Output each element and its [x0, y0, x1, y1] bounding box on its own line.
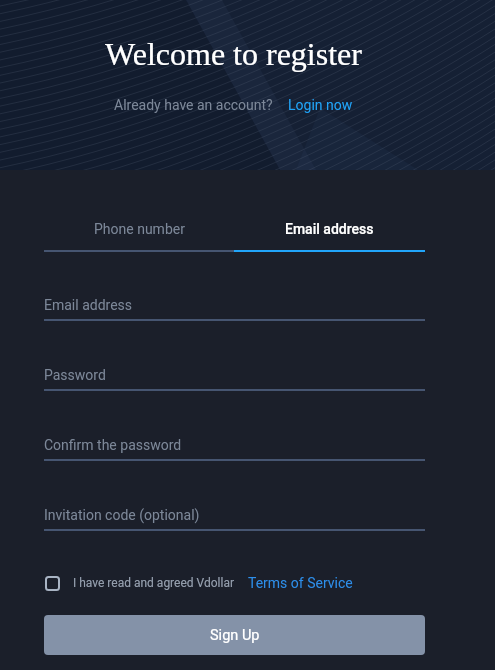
staticText: Phone number	[94, 221, 185, 237]
staticText: Login now	[288, 97, 353, 113]
button[interactable]: Email address	[44, 297, 425, 321]
staticText: Invitation code (optional)	[44, 507, 200, 523]
staticText: Sign Up	[210, 627, 260, 644]
button[interactable]: Terms of Service	[248, 575, 353, 591]
staticText: Email address	[285, 221, 374, 237]
button[interactable]: Confirm the password	[44, 437, 425, 461]
staticText: Confirm the password	[44, 437, 182, 453]
staticText: Password	[44, 367, 106, 383]
button[interactable]: Email address	[234, 215, 425, 243]
button[interactable]: Phone number	[44, 215, 234, 243]
staticText: Already have an account?	[114, 97, 273, 113]
button[interactable]: Invitation code (optional)	[44, 507, 425, 531]
staticText: Terms of Service	[248, 575, 353, 591]
staticText: Welcome to register	[105, 36, 362, 71]
staticText: Email address	[44, 297, 133, 313]
button[interactable]: Login now	[288, 97, 353, 113]
button[interactable]: Agree to terms and conditions	[45, 576, 60, 591]
button[interactable]: Sign Up	[44, 615, 425, 655]
button[interactable]: Password	[44, 367, 425, 391]
staticText: I have read and agreed Vdollar	[73, 576, 234, 590]
